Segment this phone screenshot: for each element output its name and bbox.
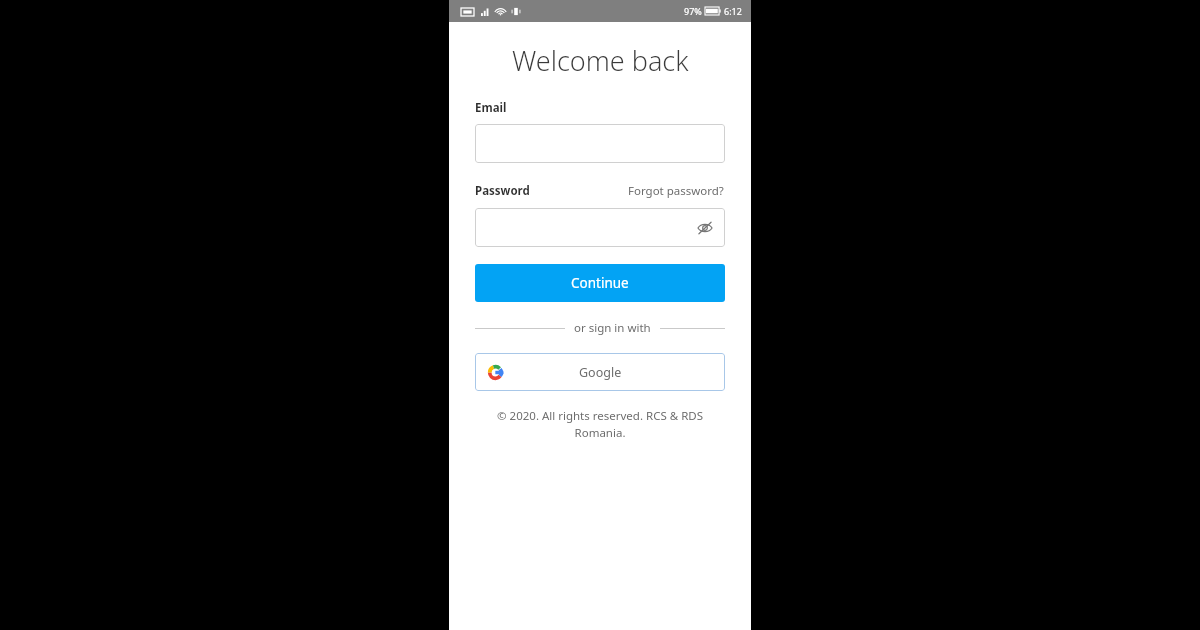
staticText: Continue bbox=[571, 274, 629, 292]
button[interactable] bbox=[475, 124, 725, 163]
staticText: Password bbox=[475, 183, 530, 199]
staticText: Forgot password? bbox=[628, 183, 724, 199]
staticText: Google bbox=[579, 364, 622, 381]
staticText: © 2020. All rights reserved. RCS & RDS R… bbox=[479, 408, 721, 441]
button[interactable]: Google bbox=[475, 353, 725, 391]
staticText: or sign in with bbox=[574, 320, 651, 336]
staticText: Welcome back bbox=[512, 42, 689, 79]
staticText: 97% bbox=[684, 5, 702, 17]
staticText: Email bbox=[475, 100, 507, 116]
button[interactable]: Show password bbox=[475, 208, 725, 247]
staticText: 6:12 bbox=[724, 5, 742, 17]
button[interactable]: Continue bbox=[475, 264, 725, 302]
button[interactable]: Show password bbox=[694, 217, 716, 239]
button[interactable]: Forgot password? bbox=[627, 181, 725, 201]
